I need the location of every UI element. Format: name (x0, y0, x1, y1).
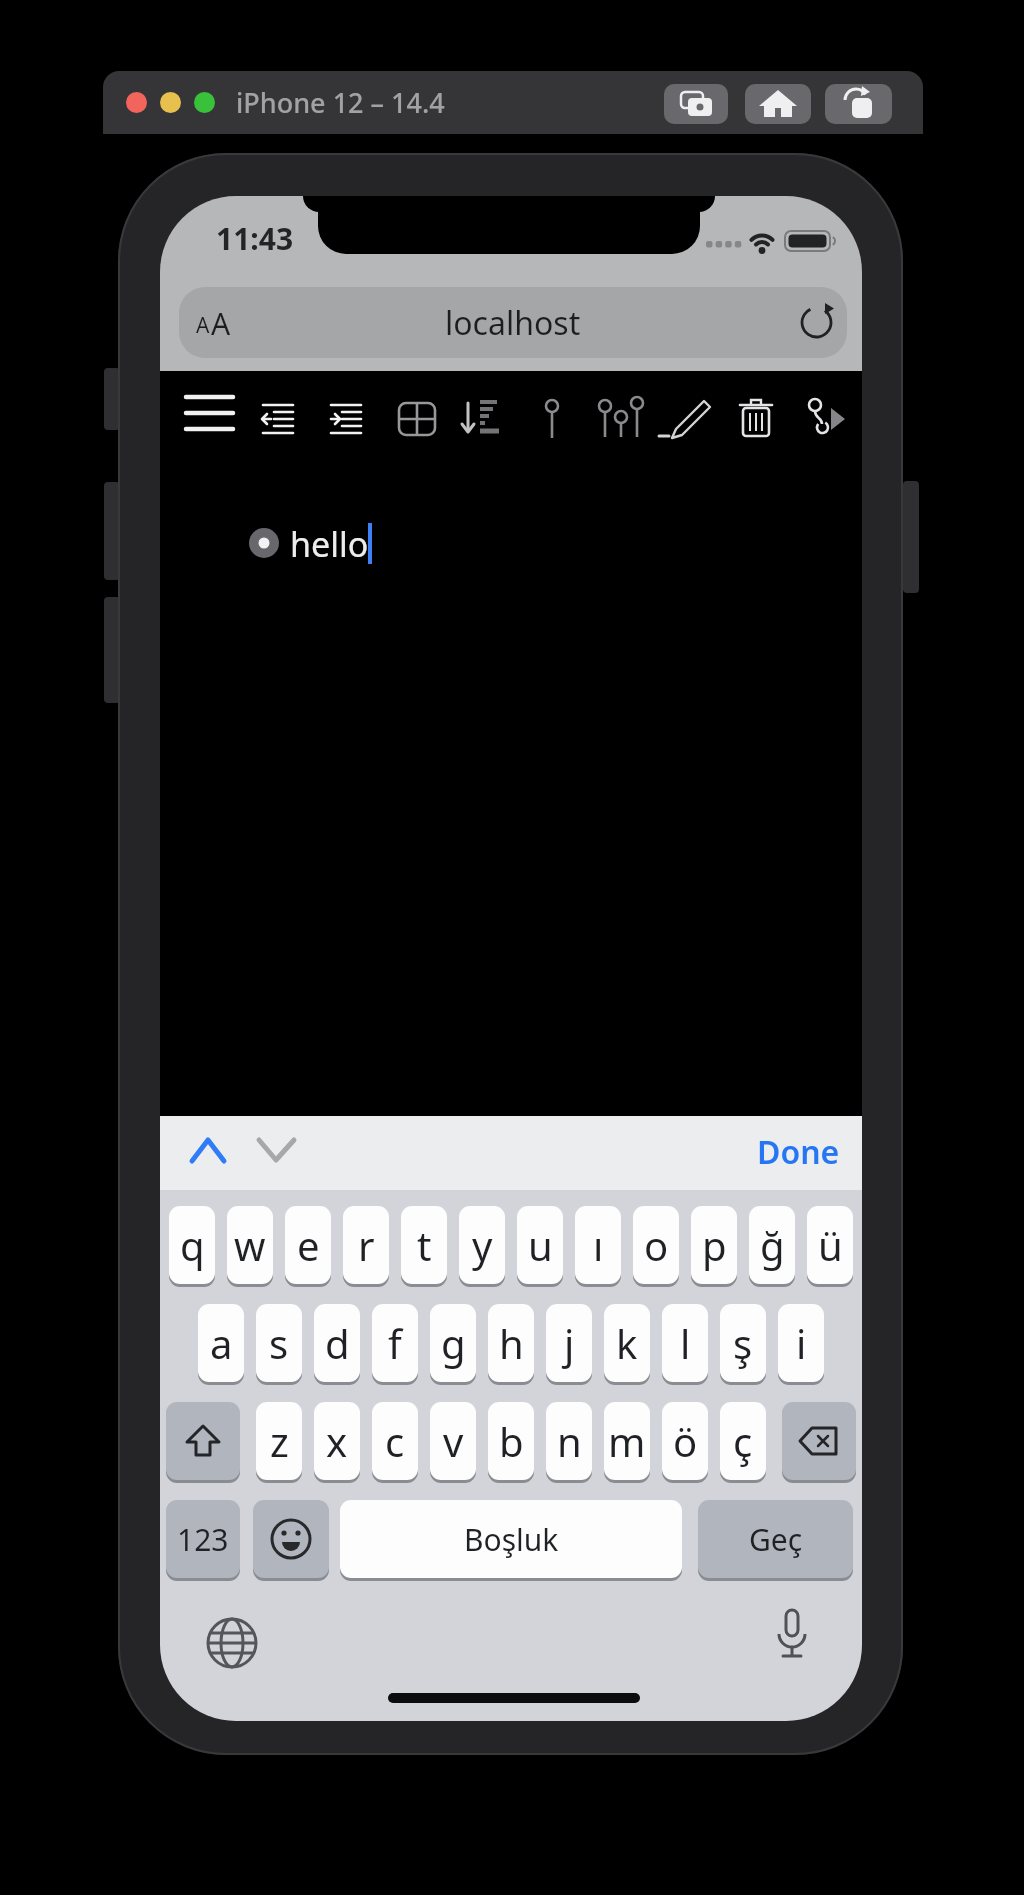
button[interactable]: g (430, 1304, 476, 1382)
button[interactable] (166, 1402, 240, 1480)
staticText: localhost (445, 301, 581, 345)
button[interactable] (770, 1608, 814, 1672)
staticText: c (385, 1414, 405, 1468)
staticText: u (528, 1218, 553, 1272)
button[interactable]: ı (575, 1206, 621, 1284)
button[interactable]: s (256, 1304, 302, 1382)
button[interactable] (782, 1402, 856, 1480)
staticText: j (564, 1316, 575, 1370)
button[interactable]: u (517, 1206, 563, 1284)
staticText: p (702, 1218, 727, 1272)
staticText: z (270, 1414, 289, 1468)
button[interactable]: j (546, 1304, 592, 1382)
button[interactable]: h (488, 1304, 534, 1382)
button[interactable] (257, 1136, 297, 1164)
button[interactable]: p (691, 1206, 737, 1284)
button[interactable] (745, 84, 811, 124)
staticText: ç (733, 1414, 753, 1468)
button[interactable]: r (343, 1206, 389, 1284)
button[interactable]: localhost (179, 287, 847, 358)
staticText: i (796, 1316, 807, 1370)
button[interactable]: q (169, 1206, 215, 1284)
staticText: 11:43 (216, 218, 294, 259)
staticText: Done (757, 1130, 840, 1174)
button[interactable] (664, 84, 728, 124)
staticText: ğ (760, 1218, 785, 1272)
staticText: m (608, 1414, 646, 1468)
button[interactable] (205, 1616, 259, 1670)
button[interactable] (126, 92, 147, 113)
button[interactable]: v (430, 1402, 476, 1480)
button[interactable]: t (401, 1206, 447, 1284)
button[interactable] (190, 1136, 226, 1164)
button[interactable]: Geç (698, 1500, 853, 1578)
button[interactable]: ğ (749, 1206, 795, 1284)
staticText: n (557, 1414, 582, 1468)
button[interactable]: Boşluk (340, 1500, 682, 1578)
button[interactable]: z (256, 1402, 302, 1480)
button[interactable]: Done (690, 1124, 840, 1180)
staticText: A (211, 303, 231, 344)
staticText: v (443, 1414, 464, 1468)
button[interactable]: ç (720, 1402, 766, 1480)
staticText: l (680, 1316, 691, 1370)
button[interactable] (194, 92, 215, 113)
staticText: o (644, 1218, 669, 1272)
button[interactable]: ö (662, 1402, 708, 1480)
button[interactable]: ş (720, 1304, 766, 1382)
button[interactable]: y (459, 1206, 505, 1284)
staticText: y (472, 1218, 493, 1272)
staticText: Geç (749, 1519, 803, 1560)
button[interactable] (160, 92, 181, 113)
button[interactable]: 123 (166, 1500, 240, 1578)
button[interactable]: c (372, 1402, 418, 1480)
staticText: ş (733, 1316, 753, 1370)
staticText: Boşluk (464, 1519, 559, 1560)
staticText: w (234, 1218, 266, 1272)
button[interactable]: e (285, 1206, 331, 1284)
button[interactable]: n (546, 1402, 592, 1480)
button[interactable]: l (662, 1304, 708, 1382)
button[interactable]: f (372, 1304, 418, 1382)
staticText: 123 (177, 1519, 229, 1560)
button[interactable]: i (778, 1304, 824, 1382)
staticText: e (297, 1218, 320, 1272)
staticText: ü (818, 1218, 843, 1272)
button[interactable] (825, 84, 892, 124)
staticText: r (358, 1218, 375, 1272)
button[interactable]: a (198, 1304, 244, 1382)
button[interactable]: d (314, 1304, 360, 1382)
staticText: f (388, 1316, 402, 1370)
staticText: a (210, 1316, 233, 1370)
staticText: ö (673, 1414, 698, 1468)
staticText: d (325, 1316, 350, 1370)
staticText: g (441, 1316, 466, 1370)
staticText: k (616, 1316, 638, 1370)
staticText: ı (593, 1218, 604, 1272)
staticText: x (326, 1414, 348, 1468)
button[interactable]: b (488, 1402, 534, 1480)
button[interactable] (794, 300, 838, 344)
button[interactable]: m (604, 1402, 650, 1480)
staticText: h (499, 1316, 524, 1370)
button[interactable]: ü (807, 1206, 853, 1284)
button[interactable] (253, 1500, 329, 1578)
staticText: hello (290, 521, 369, 565)
staticText: t (417, 1218, 432, 1272)
staticText: s (269, 1316, 289, 1370)
staticText: q (180, 1218, 205, 1272)
staticText: b (499, 1414, 524, 1468)
staticText: iPhone 12 – 14.4 (236, 84, 445, 121)
button[interactable]: x (314, 1402, 360, 1480)
button[interactable]: k (604, 1304, 650, 1382)
button[interactable]: w (227, 1206, 273, 1284)
button[interactable]: o (633, 1206, 679, 1284)
staticText: A (196, 311, 210, 340)
